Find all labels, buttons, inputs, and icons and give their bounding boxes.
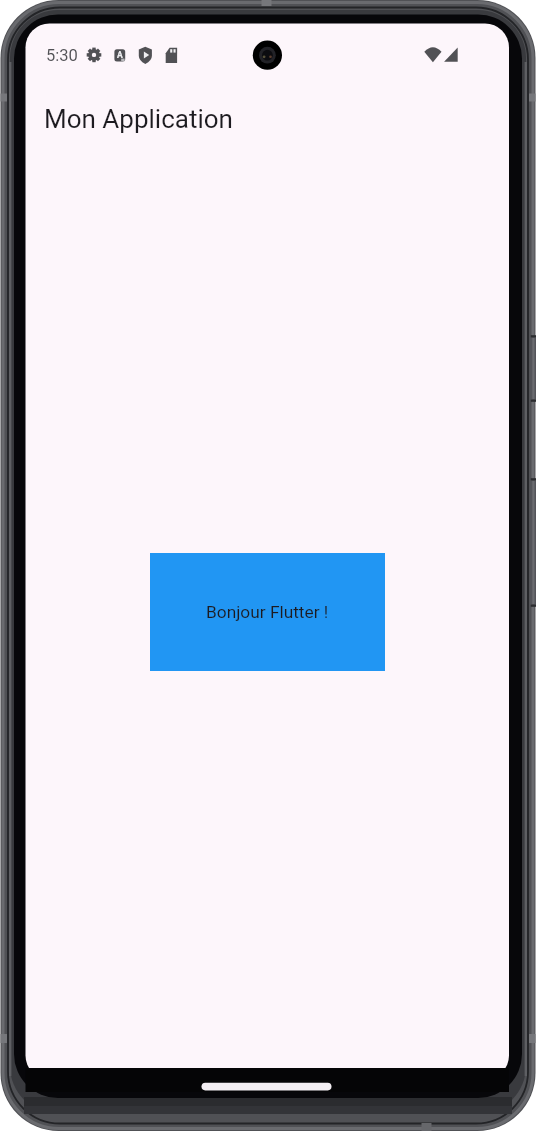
staticText: Bonjour Flutter ! (206, 602, 329, 622)
staticText: A (117, 50, 123, 60)
staticText: 5:30 (46, 46, 78, 65)
button[interactable]: Bonjour Flutter ! (150, 553, 385, 671)
staticText: Mon Application (44, 104, 233, 134)
